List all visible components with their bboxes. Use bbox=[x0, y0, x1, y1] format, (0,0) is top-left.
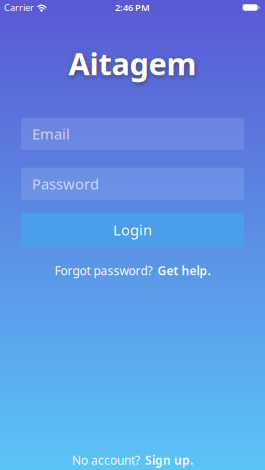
textField[interactable]: Password bbox=[21, 168, 244, 200]
staticText: Get help. bbox=[157, 263, 210, 279]
staticText: Password bbox=[32, 174, 99, 193]
button[interactable]: Get help. bbox=[157, 263, 210, 279]
staticText: Sign up. bbox=[145, 452, 193, 468]
staticText: Aitagem bbox=[68, 43, 196, 84]
staticText: Carrier bbox=[4, 1, 34, 14]
button[interactable]: Login bbox=[21, 213, 244, 247]
staticText: Login bbox=[113, 220, 152, 239]
button[interactable]: Sign up. bbox=[145, 452, 193, 468]
staticText: Email bbox=[32, 124, 70, 143]
staticText: 2:46 PM bbox=[115, 1, 150, 14]
staticText: No account? bbox=[72, 452, 140, 468]
textField[interactable]: Email bbox=[21, 118, 244, 150]
staticText: Forgot password? bbox=[54, 263, 152, 279]
